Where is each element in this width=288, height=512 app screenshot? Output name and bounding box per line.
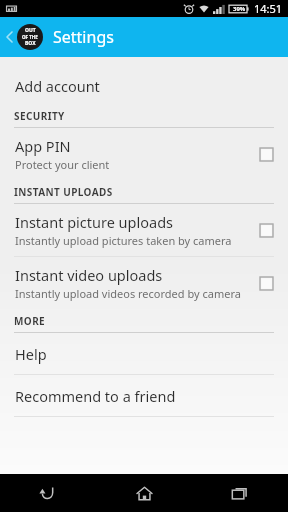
button[interactable]: Home bbox=[96, 474, 192, 512]
staticText: OF THE bbox=[22, 34, 38, 40]
button[interactable]: App PIN bbox=[0, 128, 288, 180]
staticText: Instant picture uploads bbox=[15, 212, 174, 232]
staticText: App PIN bbox=[15, 136, 71, 156]
button[interactable]: Recent apps bbox=[192, 474, 288, 512]
staticText: Settings bbox=[53, 26, 114, 48]
staticText: Instantly upload pictures taken by camer… bbox=[15, 233, 232, 248]
button[interactable]: Back bbox=[0, 474, 96, 512]
button[interactable]: Add account bbox=[0, 68, 288, 104]
button[interactable]: Recommend to a friend bbox=[0, 375, 288, 416]
button[interactable]: Instant video uploads bbox=[0, 257, 288, 309]
staticText: Help bbox=[15, 344, 47, 364]
staticText: 39% bbox=[233, 5, 246, 13]
staticText: Recommend to a friend bbox=[15, 386, 176, 406]
staticText: MORE bbox=[14, 314, 46, 328]
staticText: Instant video uploads bbox=[15, 265, 163, 285]
staticText: SECURITY bbox=[14, 109, 65, 123]
button[interactable]: Navigate up bbox=[0, 20, 45, 54]
button[interactable]: Help bbox=[0, 333, 288, 374]
staticText: BOX bbox=[25, 40, 36, 47]
staticText: Add account bbox=[15, 76, 100, 96]
staticText: Protect your client bbox=[15, 157, 110, 172]
staticText: 14:51 bbox=[254, 1, 283, 16]
staticText: Instantly upload videos recorded by came… bbox=[15, 286, 241, 301]
button[interactable]: Instant picture uploads bbox=[0, 204, 288, 256]
staticText: OUT bbox=[25, 27, 36, 34]
staticText: INSTANT UPLOADS bbox=[14, 185, 113, 199]
